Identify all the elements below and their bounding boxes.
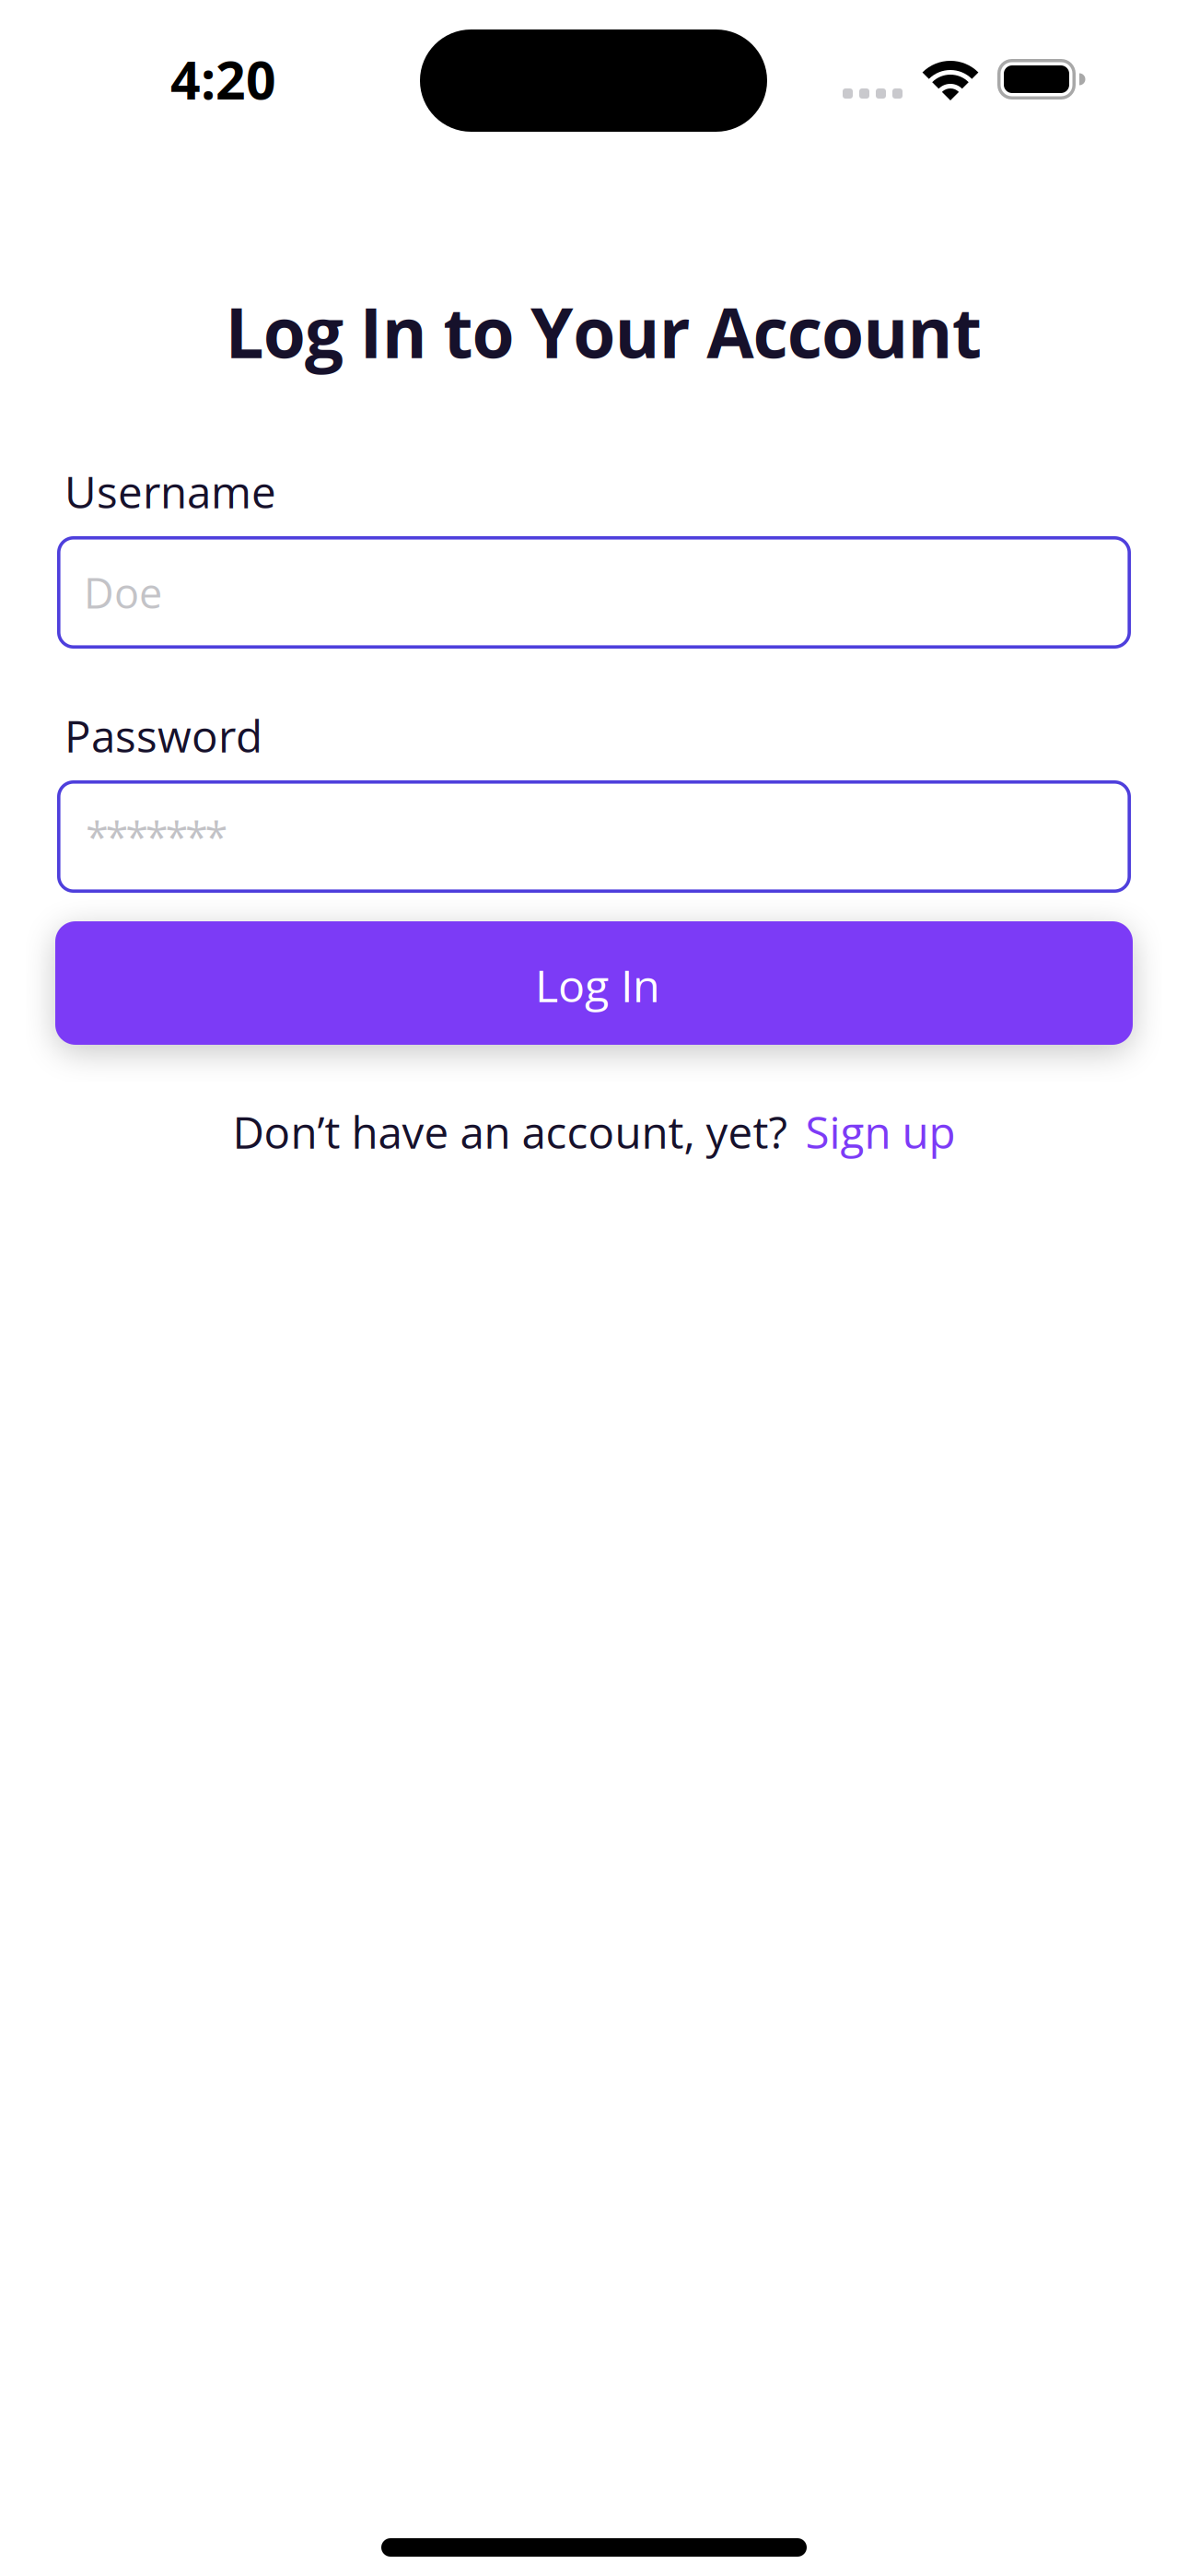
staticText: Log In [535, 955, 660, 1015]
button[interactable]: Username [57, 536, 1131, 649]
button[interactable]: Password [57, 780, 1131, 893]
staticText: Sign up [805, 1102, 955, 1161]
staticText: ******* [86, 808, 228, 865]
button[interactable]: Sign up [798, 1102, 955, 1161]
staticText: Doe [84, 564, 162, 621]
staticText: Log In to Your Account [225, 285, 981, 378]
staticText: Username [64, 462, 276, 521]
staticText: Password [64, 706, 262, 765]
staticText: 4:20 [170, 43, 276, 115]
staticText: Don’t have an account, yet? [233, 1102, 798, 1161]
button[interactable]: Log In [55, 921, 1133, 1045]
